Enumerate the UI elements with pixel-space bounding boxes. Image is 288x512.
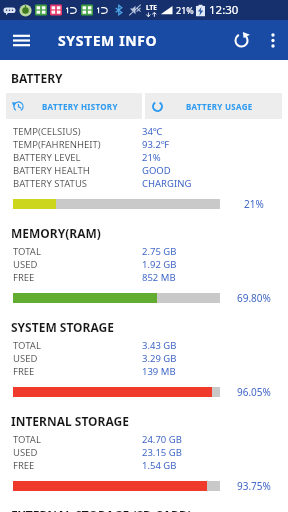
staticText: 69.80% <box>237 291 271 305</box>
staticText: 139 MB <box>142 365 176 378</box>
staticText: 12:30 <box>209 2 239 18</box>
staticText: 852 MB <box>142 271 176 284</box>
staticText: USED <box>13 258 142 271</box>
staticText: 93.2℉ <box>142 138 170 151</box>
staticText: TEMP(CELSIUS) <box>13 125 142 138</box>
staticText: BATTERY <box>11 70 63 86</box>
staticText: 93.75% <box>237 479 271 493</box>
staticText: BATTERY LEVEL <box>13 151 142 164</box>
staticText: 23.15 GB <box>142 446 182 459</box>
staticText: TEMP(FAHRENHEIT) <box>13 138 142 151</box>
staticText: 1.54 GB <box>142 459 177 472</box>
staticText: 34℃ <box>142 125 163 138</box>
staticText: SYSTEM STORAGE <box>11 319 114 335</box>
staticText: 3.29 GB <box>142 352 177 365</box>
staticText: 21% <box>244 197 264 211</box>
staticText: USED <box>13 446 142 459</box>
staticText: 2.75 GB <box>142 245 177 258</box>
staticText: INTERNAL STORAGE <box>11 413 129 429</box>
staticText: TOTAL <box>13 433 142 446</box>
staticText: USED <box>13 352 142 365</box>
staticText: EXTERNAL STORAGE (SD CARD) <box>11 507 192 512</box>
staticText: TOTAL <box>13 245 142 258</box>
staticText: BATTERY USAGE <box>186 101 253 112</box>
button[interactable]: Open navigation drawer <box>3 22 39 58</box>
staticText: 21% <box>176 4 194 16</box>
button[interactable]: Refresh <box>223 22 259 58</box>
staticText: 24.70 GB <box>142 433 182 446</box>
staticText: TOTAL <box>13 339 142 352</box>
staticText: 3.43 GB <box>142 339 177 352</box>
staticText: MEMORY(RAM) <box>11 225 101 241</box>
staticText: FREE <box>13 271 142 284</box>
staticText: FREE <box>13 459 142 472</box>
staticText: FREE <box>13 365 142 378</box>
staticText: 21% <box>142 151 161 164</box>
staticText: GOOD <box>142 164 171 177</box>
staticText: BATTERY HEALTH <box>13 164 142 177</box>
button[interactable]: BATTERY USAGE <box>145 93 282 119</box>
staticText: BATTERY HISTORY <box>42 101 118 112</box>
button[interactable]: More options <box>259 26 287 54</box>
staticText: LTE <box>146 3 157 12</box>
staticText: CHARGING <box>142 177 192 190</box>
staticText: BATTERY STATUS <box>13 177 142 190</box>
button[interactable]: BATTERY HISTORY <box>6 93 142 119</box>
staticText: SYSTEM INFO <box>58 31 158 50</box>
staticText: 96.05% <box>237 385 271 399</box>
staticText: 1.92 GB <box>142 258 177 271</box>
